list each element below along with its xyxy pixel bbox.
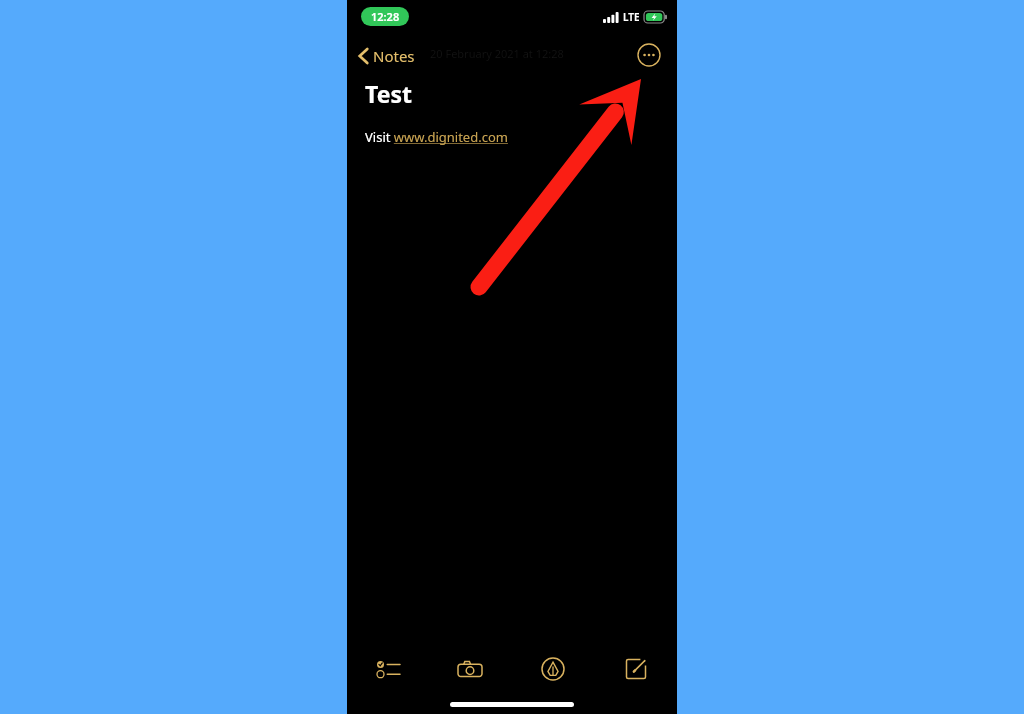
button[interactable]: Camera — [429, 650, 511, 688]
staticText: Visit www.dignited.com — [365, 128, 508, 146]
staticText: Test — [365, 78, 412, 109]
staticText: 12:28 — [371, 9, 400, 24]
button[interactable]: More options — [635, 41, 663, 69]
button[interactable]: New note — [594, 650, 677, 688]
staticText: 20 February 2021 at 12:28 — [430, 46, 564, 61]
button[interactable]: Markup — [511, 650, 594, 688]
button[interactable]: Notes — [355, 40, 419, 72]
button[interactable]: Checklist — [347, 650, 429, 688]
staticText: LTE — [623, 10, 640, 24]
staticText: Notes — [373, 46, 415, 66]
